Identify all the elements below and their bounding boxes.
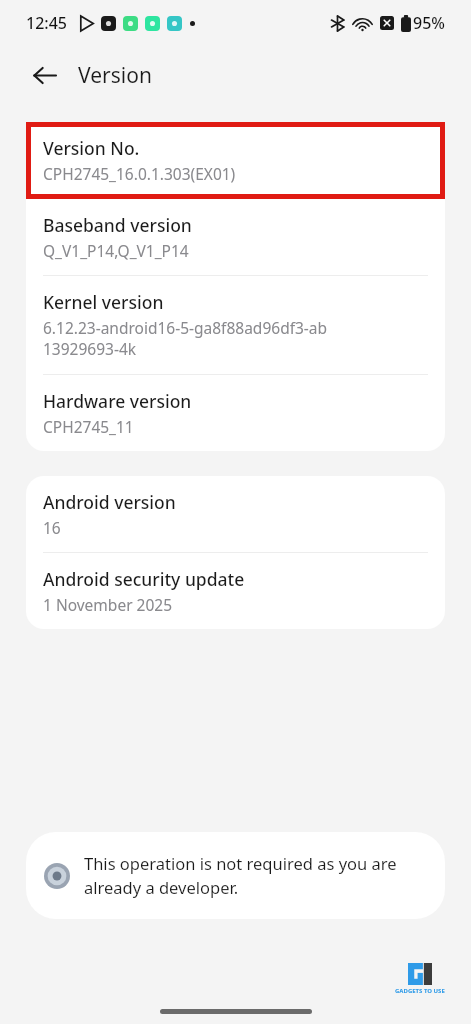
staticText: Version No.	[43, 136, 140, 160]
staticText: Android version	[43, 490, 176, 514]
staticText: Baseband version	[43, 213, 192, 237]
button[interactable]: Android security update	[26, 553, 445, 629]
staticText: Hardware version	[43, 389, 192, 413]
button[interactable]: Android version	[26, 476, 445, 552]
staticText: Kernel version	[43, 290, 164, 314]
button[interactable]: Version No.	[26, 122, 445, 198]
button[interactable]: Kernel version	[26, 276, 445, 374]
staticText: 1 November 2025	[43, 594, 173, 615]
staticText: GADGETS TO USE	[395, 987, 445, 995]
staticText: CPH2745_16.0.1.303(EX01)	[43, 163, 236, 184]
button[interactable]: Baseband version	[26, 199, 445, 275]
staticText: 95%	[413, 12, 445, 34]
button[interactable]: Hardware version	[26, 375, 445, 451]
staticText: 12:45	[26, 12, 67, 34]
staticText: Version	[78, 61, 152, 90]
staticText: This operation is not required as you ar…	[84, 852, 397, 899]
staticText: Android security update	[43, 567, 245, 591]
button[interactable]: This operation is not required as you ar…	[26, 832, 445, 919]
staticText: 6.12.23-android16-5-ga8f88ad96df3-ab 139…	[43, 317, 328, 360]
staticText: CPH2745_11	[43, 416, 134, 437]
staticText: Q_V1_P14,Q_V1_P14	[43, 240, 189, 261]
staticText: 16	[43, 517, 61, 538]
button[interactable]: Back	[22, 53, 66, 97]
